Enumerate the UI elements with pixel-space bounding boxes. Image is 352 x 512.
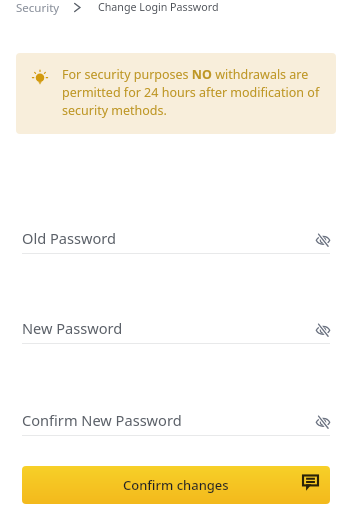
button[interactable]: Show password [315, 414, 331, 430]
button[interactable]: Security [16, 0, 60, 16]
button[interactable]: Chat support [300, 473, 320, 493]
staticText: New Password [22, 318, 123, 335]
button[interactable]: Show password [315, 232, 331, 248]
staticText: Change Login Password [98, 0, 219, 15]
staticText: Confirm changes [123, 476, 229, 494]
button[interactable]: Show password [315, 322, 331, 338]
staticText: Old Password [22, 228, 116, 245]
staticText: Confirm New Password [22, 410, 182, 427]
staticText: For security purposes NO withdrawals are… [62, 66, 326, 119]
button[interactable]: Confirm changes [22, 466, 330, 504]
